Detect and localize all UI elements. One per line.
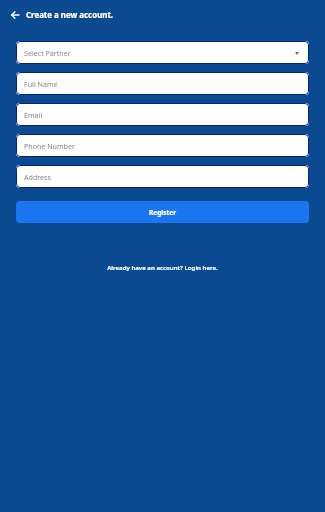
staticText: Register bbox=[149, 208, 177, 217]
staticText: Address bbox=[24, 172, 51, 182]
button[interactable]: Register bbox=[16, 201, 309, 223]
staticText: Select Partner bbox=[24, 48, 71, 58]
button[interactable]: Phone Number bbox=[16, 134, 309, 157]
button[interactable]: Already have an account? Login here. bbox=[107, 263, 218, 271]
button[interactable]: Address bbox=[16, 165, 309, 188]
staticText: Full Name bbox=[24, 79, 58, 89]
button[interactable]: Full Name bbox=[16, 72, 309, 95]
button[interactable]: Email bbox=[16, 103, 309, 126]
staticText: Email bbox=[24, 110, 43, 120]
staticText: Create a new account. bbox=[26, 10, 114, 21]
staticText: Phone Number bbox=[24, 141, 75, 151]
button[interactable]: Select Partner bbox=[16, 41, 309, 64]
button[interactable]: Back bbox=[8, 8, 22, 22]
